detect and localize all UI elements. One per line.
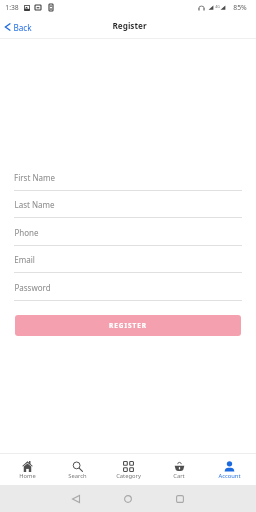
- staticText: Search: [68, 472, 87, 480]
- button[interactable]: Home: [116, 485, 140, 512]
- button[interactable]: Search: [53, 454, 101, 485]
- staticText: Account: [218, 472, 241, 480]
- staticText: REGISTER: [109, 321, 147, 330]
- staticText: Category: [116, 472, 141, 480]
- staticText: 4G: [215, 4, 220, 9]
- button[interactable]: Back: [64, 485, 88, 512]
- button[interactable]: Category: [104, 454, 152, 485]
- button[interactable]: REGISTER: [15, 315, 241, 336]
- staticText: Last Name: [14, 199, 55, 210]
- staticText: 85%: [233, 3, 247, 12]
- button[interactable]: First Name: [14, 168, 242, 196]
- staticText: Phone: [14, 227, 39, 238]
- staticText: 1:38: [5, 3, 19, 12]
- staticText: Password: [14, 282, 51, 293]
- button[interactable]: Back: [4, 15, 32, 39]
- staticText: Email: [14, 254, 35, 265]
- button[interactable]: Email: [14, 250, 242, 278]
- button[interactable]: Cart: [155, 454, 203, 485]
- button[interactable]: Recents: [168, 485, 192, 512]
- staticText: Register: [112, 20, 147, 31]
- button[interactable]: Account: [205, 454, 253, 485]
- button[interactable]: Home: [3, 454, 51, 485]
- staticText: Cart: [173, 472, 185, 480]
- staticText: Back: [13, 22, 32, 33]
- staticText: First Name: [14, 172, 55, 183]
- button[interactable]: Phone: [14, 223, 242, 251]
- button[interactable]: Last Name: [14, 195, 242, 223]
- staticText: Home: [19, 472, 36, 480]
- button[interactable]: Password: [14, 278, 242, 306]
